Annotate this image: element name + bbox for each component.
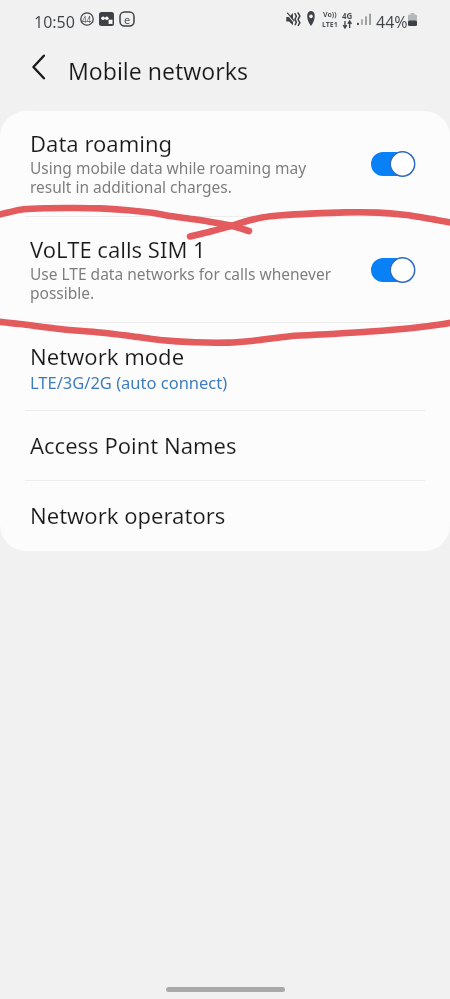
staticText: VoLTE calls SIM 1: [30, 234, 206, 264]
button[interactable]: Data roaming switch: [368, 139, 420, 189]
staticText: Network operators: [30, 500, 226, 530]
staticText: Mobile networks: [68, 55, 249, 86]
staticText: Network mode: [30, 341, 185, 371]
staticText: 10:50: [34, 11, 75, 33]
staticText: LTE1: [322, 20, 338, 30]
staticText: Access Point Names: [30, 430, 237, 460]
staticText: Use LTE data networks for calls whenever…: [30, 263, 332, 303]
button[interactable]: Network operators: [0, 481, 450, 551]
staticText: Using mobile data while roaming may resu…: [30, 157, 307, 197]
button[interactable]: VoLTE calls SIM 1 switch: [368, 245, 420, 295]
staticText: LTE/3G/2G (auto connect): [30, 371, 228, 393]
staticText: Data roaming: [30, 128, 173, 158]
staticText: Vo)): [323, 10, 337, 20]
button[interactable]: Access Point Names: [0, 411, 450, 481]
button[interactable]: Navigate up: [16, 44, 62, 90]
staticText: 4G: [342, 10, 353, 21]
staticText: 44%: [376, 11, 408, 33]
button[interactable]: Data roaming: [0, 111, 450, 217]
button[interactable]: Network mode: [0, 323, 450, 411]
staticText: 44: [82, 14, 92, 25]
staticText: e: [124, 12, 131, 26]
button[interactable]: VoLTE calls SIM 1: [0, 217, 450, 323]
